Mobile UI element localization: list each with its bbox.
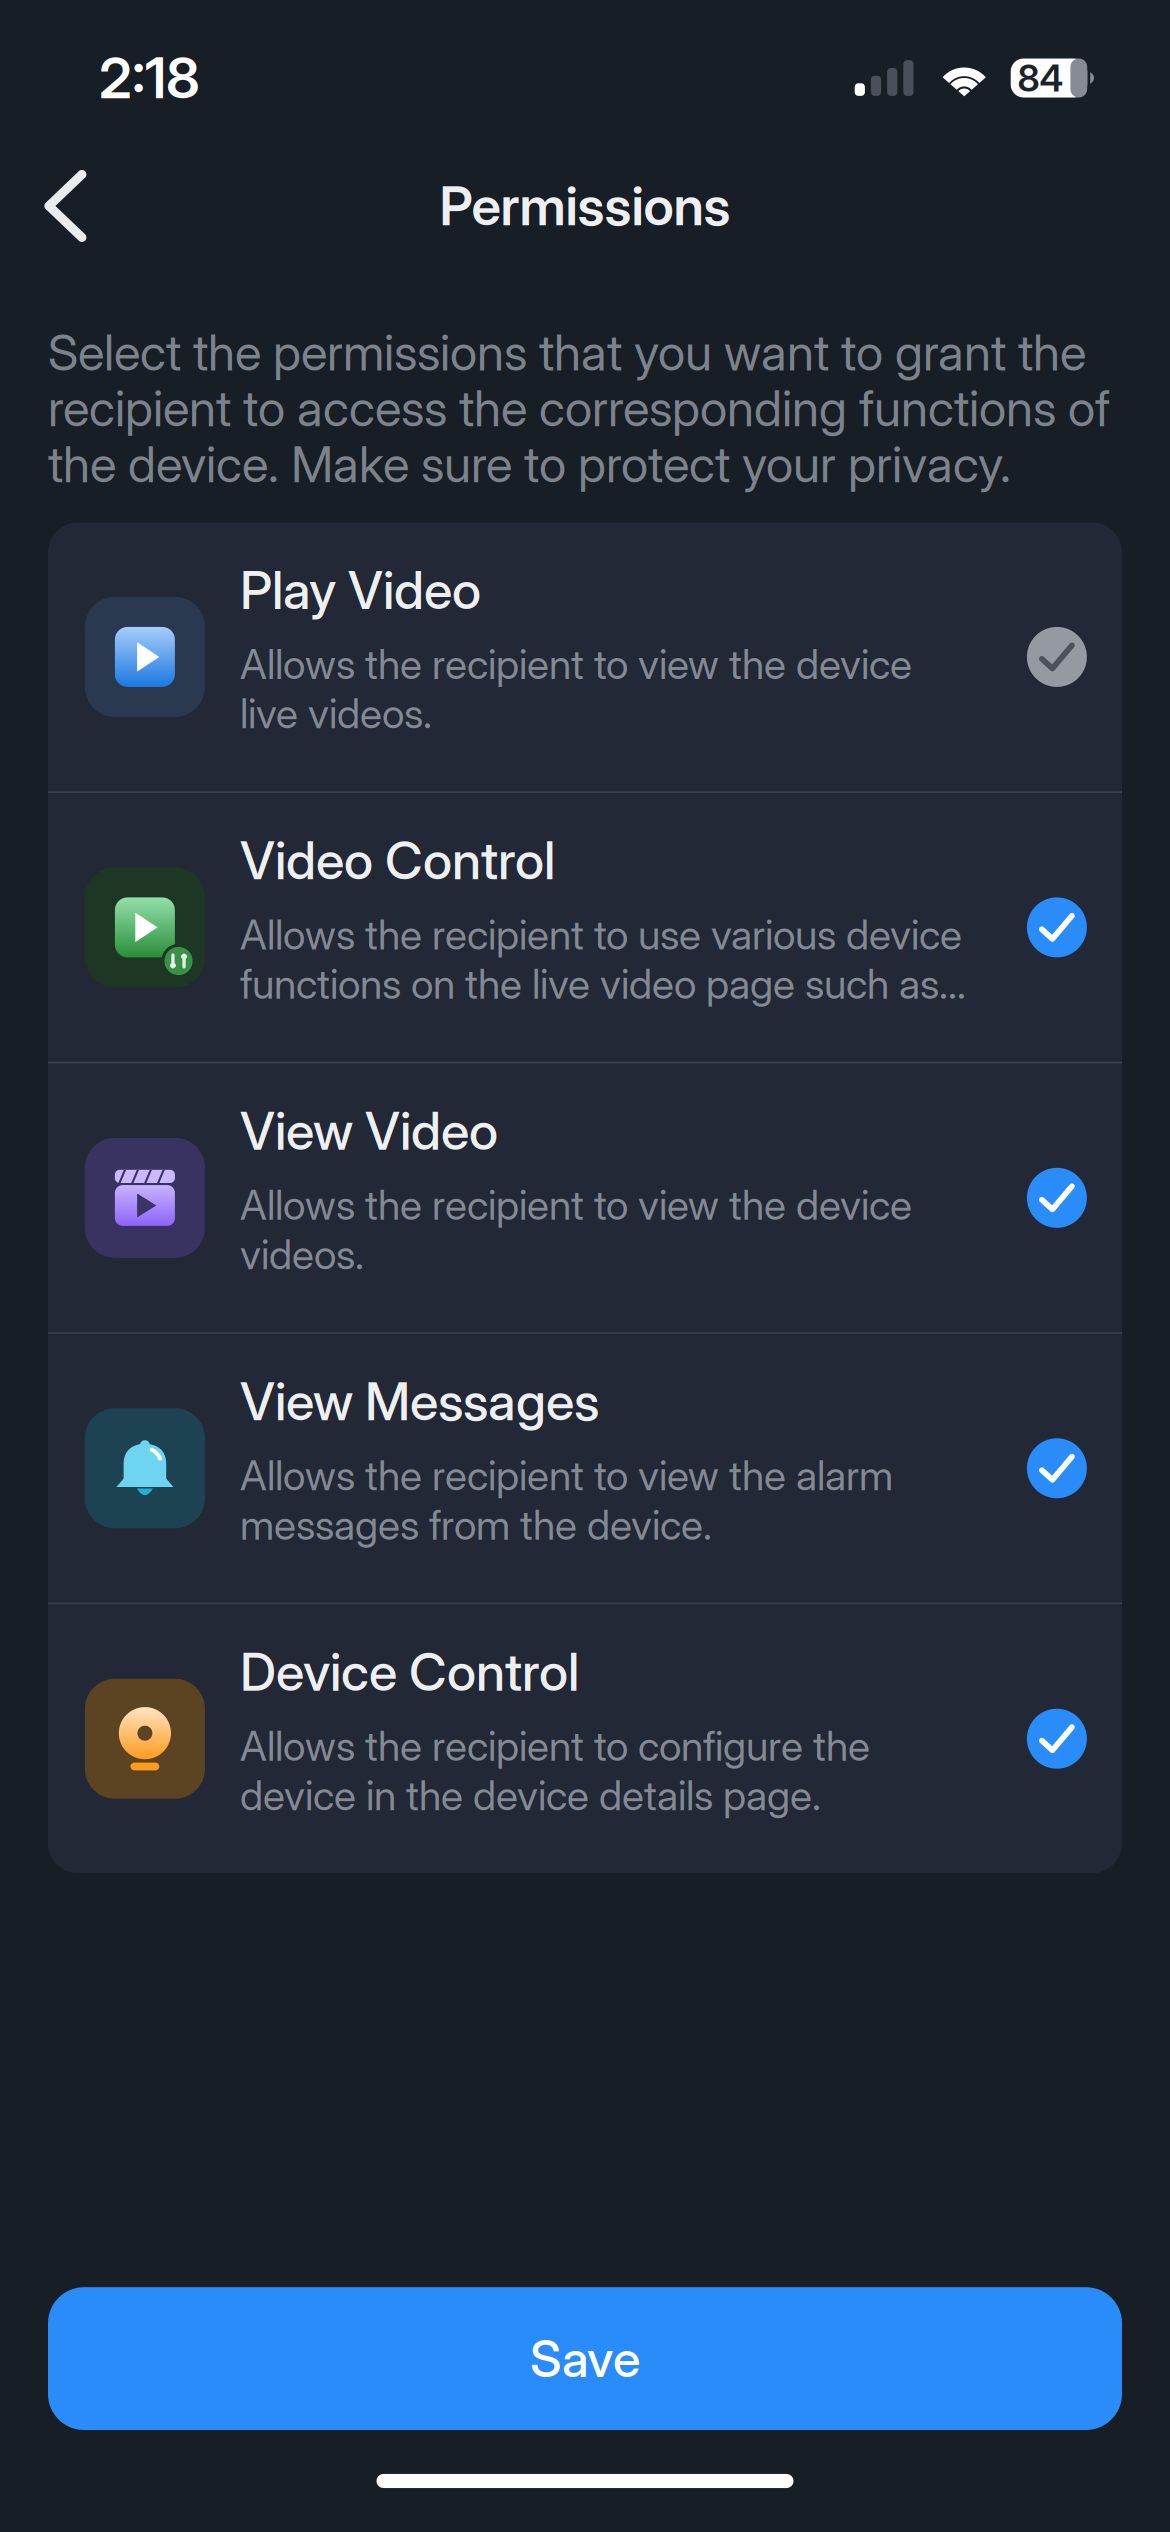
staticText: View Video xyxy=(240,1099,498,1162)
staticText: Allows the recipient to view the device … xyxy=(240,1180,912,1279)
staticText: 84 xyxy=(1017,56,1063,100)
staticText: Allows the recipient to configure the de… xyxy=(240,1721,870,1820)
staticText: Device Control xyxy=(240,1640,579,1703)
staticText: Allows the recipient to use various devi… xyxy=(240,910,975,1009)
staticText: Select the permissions that you want to … xyxy=(48,323,1110,494)
button[interactable]: Back xyxy=(0,135,142,276)
staticText: Save xyxy=(530,2328,640,2389)
staticText: Video Control xyxy=(240,829,555,892)
button[interactable]: View Video xyxy=(48,1063,1122,1332)
staticText: Permissions xyxy=(439,174,730,238)
button[interactable]: Play Video xyxy=(48,522,1122,791)
staticText: Play Video xyxy=(240,558,481,621)
staticText: View Messages xyxy=(240,1370,599,1433)
staticText: Allows the recipient to view the device … xyxy=(240,639,912,738)
button[interactable]: View Messages xyxy=(48,1334,1122,1603)
button[interactable]: Video Control xyxy=(48,793,1122,1062)
staticText: Allows the recipient to view the alarm m… xyxy=(240,1451,893,1549)
button[interactable]: Save xyxy=(48,2287,1122,2430)
staticText: 2:18 xyxy=(99,44,200,112)
button[interactable]: Device Control xyxy=(48,1604,1122,1873)
